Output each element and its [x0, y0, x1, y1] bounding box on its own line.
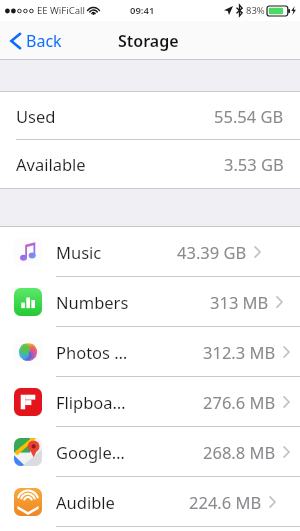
button[interactable]: Photos: [0, 327, 300, 377]
staticText: Available: [16, 153, 86, 175]
other: Google Maps: [14, 438, 42, 466]
staticText: Google Maps: [56, 441, 129, 463]
staticText: Back: [26, 30, 62, 52]
staticText: 313 MB: [210, 291, 269, 313]
staticText: 43.39 GB: [177, 241, 247, 263]
staticText: Flipboard: [56, 391, 129, 413]
button[interactable]: Flipboard: [0, 377, 300, 427]
staticText: Audible: [56, 491, 115, 513]
staticText: 83%: [246, 4, 265, 17]
button[interactable]: Numbers: [0, 277, 300, 327]
button[interactable]: Used: [0, 92, 300, 140]
other: Flipboard: [14, 388, 42, 416]
staticText: Used: [16, 105, 56, 127]
staticText: Photos & C...: [56, 341, 129, 363]
other: Music: [14, 238, 42, 266]
other: Photos: [14, 338, 42, 366]
staticText: 268.8 MB: [203, 441, 276, 463]
button[interactable]: Back: [6, 26, 66, 56]
other: Numbers: [14, 288, 42, 316]
staticText: Music: [56, 241, 102, 263]
staticText: Numbers: [56, 291, 129, 313]
staticText: 3.53 GB: [224, 153, 284, 175]
button[interactable]: Audible: [0, 477, 300, 527]
button[interactable]: Music: [0, 227, 300, 277]
other: Audible: [14, 488, 42, 516]
staticText: Storage: [118, 30, 179, 52]
staticText: 224.6 MB: [189, 491, 262, 513]
button[interactable]: Available: [0, 140, 300, 188]
button[interactable]: Google Maps: [0, 427, 300, 477]
staticText: 09:41: [130, 4, 155, 17]
staticText: 312.3 MB: [203, 341, 276, 363]
staticText: 55.54 GB: [214, 105, 284, 127]
staticText: 276.6 MB: [203, 391, 276, 413]
staticText: EE WiFiCall: [37, 4, 85, 17]
